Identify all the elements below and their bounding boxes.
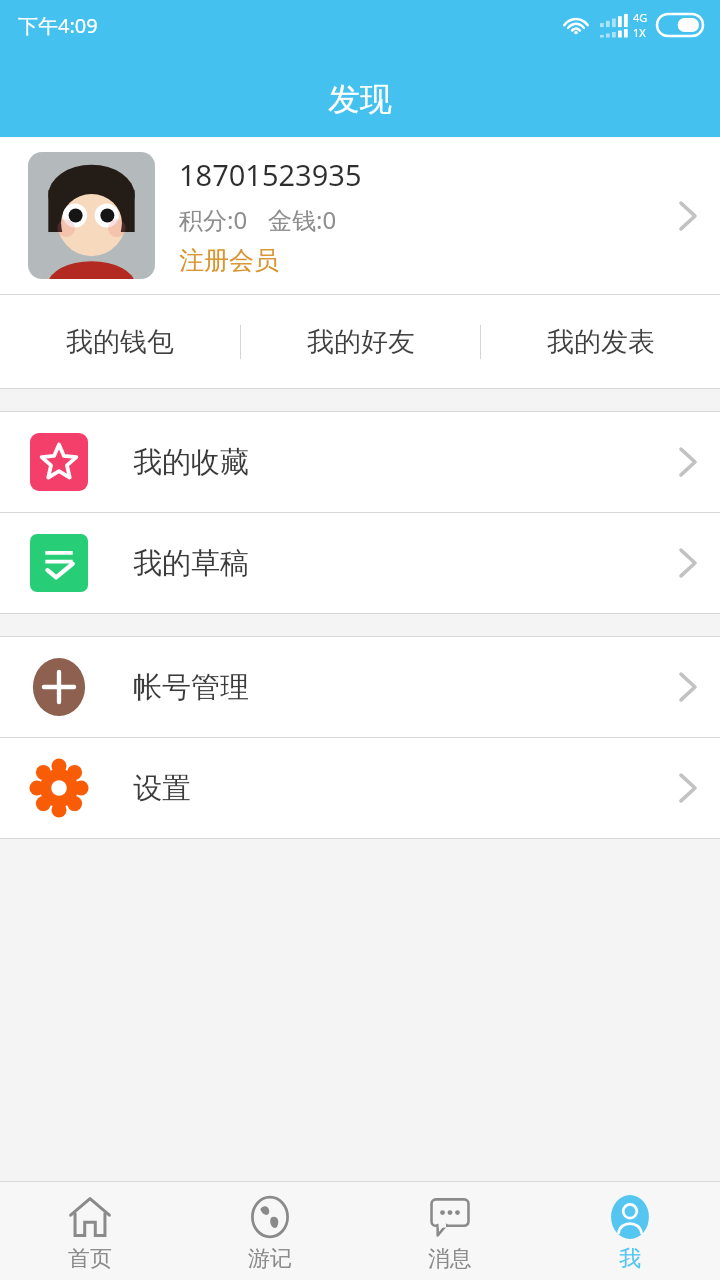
staticText: 下午4:09 xyxy=(18,12,98,39)
button[interactable]: 首页 xyxy=(0,1182,180,1280)
button[interactable]: 帐号管理 xyxy=(0,637,720,737)
button[interactable]: 我的发表 xyxy=(481,295,720,388)
other: 首页 xyxy=(68,1195,112,1239)
button[interactable]: 设置 xyxy=(0,738,720,838)
staticText: 游记 xyxy=(248,1245,292,1273)
button[interactable]: 我的钱包 xyxy=(0,295,240,388)
staticText: 金钱:0 xyxy=(268,203,337,236)
other: 游记 xyxy=(248,1195,292,1239)
staticText: 我 xyxy=(619,1245,641,1273)
staticText: 消息 xyxy=(428,1245,472,1273)
button[interactable]: 我的收藏 xyxy=(0,412,720,512)
button[interactable]: 我 xyxy=(540,1182,720,1280)
staticText: 积分:0 xyxy=(179,203,248,236)
staticText: 设置 xyxy=(133,770,678,807)
button[interactable]: 18701523935 xyxy=(0,137,720,294)
staticText: 帐号管理 xyxy=(133,669,678,706)
button[interactable]: 消息 xyxy=(360,1182,540,1280)
staticText: 发现 xyxy=(328,79,392,119)
other: 我 xyxy=(608,1195,652,1239)
button[interactable]: 我的好友 xyxy=(241,295,480,388)
other: 消息 xyxy=(428,1195,472,1239)
staticText: 我的收藏 xyxy=(133,444,678,481)
button[interactable]: 游记 xyxy=(180,1182,360,1280)
staticText: 我的发表 xyxy=(547,325,655,359)
staticText: 18701523935 xyxy=(179,155,362,194)
staticText: 注册会员 xyxy=(179,245,279,276)
button[interactable]: 我的草稿 xyxy=(0,513,720,613)
staticText: 我的钱包 xyxy=(66,325,174,359)
staticText: 首页 xyxy=(68,1245,112,1273)
staticText: 1X xyxy=(633,25,646,40)
staticText: 我的好友 xyxy=(307,325,415,359)
staticText: 我的草稿 xyxy=(133,545,678,582)
staticText: 4G xyxy=(633,10,648,25)
